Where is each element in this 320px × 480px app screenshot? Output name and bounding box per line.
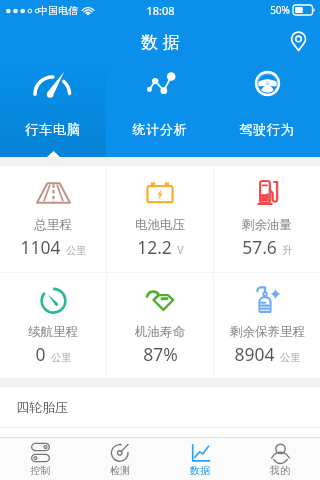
staticText: 公里 [280, 351, 301, 364]
button[interactable]: 驾驶行为 [213, 62, 320, 157]
button[interactable]: 我的 [240, 438, 320, 480]
staticText: 统计分析 [132, 121, 188, 137]
staticText: 我的 [270, 464, 290, 477]
staticText: 18:08 [146, 3, 175, 18]
staticText: 50% [270, 3, 290, 17]
staticText: 续航里程 [28, 324, 78, 340]
staticText: 公里 [66, 244, 87, 257]
staticText: 升 [282, 244, 293, 257]
button[interactable]: 电池电压 [107, 166, 213, 272]
button[interactable]: 四轮胎压 [0, 387, 320, 427]
staticText: 行车电脑 [25, 121, 81, 137]
staticText: 数 据 [141, 30, 180, 53]
staticText: 剩余油量 [242, 217, 292, 233]
button[interactable]: 检测 [80, 438, 160, 480]
staticText: 检测 [110, 464, 130, 477]
staticText: 87% [143, 342, 178, 366]
staticText: 驾驶行为 [239, 121, 295, 137]
staticText: 0 [35, 342, 46, 366]
staticText: V [177, 243, 184, 257]
staticText: 总里程 [34, 217, 72, 233]
staticText: 1104 [20, 235, 61, 259]
button[interactable]: 控制 [0, 438, 80, 480]
staticText: 机油寿命 [135, 324, 185, 340]
button[interactable]: Location [276, 20, 320, 62]
staticText: 57.6 [242, 235, 277, 259]
button[interactable]: 总里程 [0, 166, 106, 272]
staticText: 电池电压 [135, 217, 185, 233]
button[interactable]: 剩余保养里程 [214, 273, 320, 378]
button[interactable]: 数据 [160, 438, 240, 480]
button[interactable]: 剩余油量 [214, 166, 320, 272]
button[interactable]: 行车电脑 [0, 62, 106, 157]
staticText: 剩余保养里程 [230, 324, 305, 340]
staticText: 中国电信 [38, 4, 78, 17]
button[interactable]: 统计分析 [106, 62, 213, 157]
button[interactable]: 续航里程 [0, 273, 106, 378]
staticText: 控制 [30, 464, 50, 477]
staticText: 12.2 [137, 235, 172, 259]
staticText: 四轮胎压 [16, 399, 68, 415]
button[interactable]: 机油寿命 [107, 273, 213, 378]
staticText: 8904 [234, 342, 275, 366]
staticText: 公里 [51, 351, 72, 364]
staticText: 数据 [190, 464, 210, 477]
